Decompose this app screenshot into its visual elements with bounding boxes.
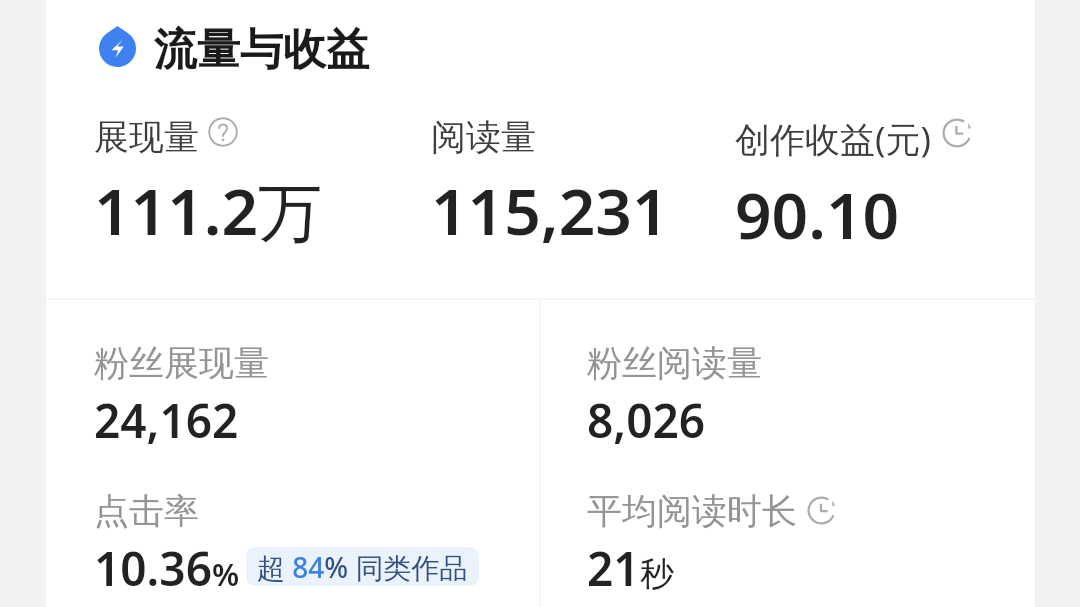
button[interactable]: 创作收益(元) (735, 115, 932, 258)
staticText: % (212, 553, 240, 595)
staticText: 21 (587, 537, 640, 600)
button[interactable]: 粉丝阅读量 (587, 341, 762, 452)
staticText: 111.2万 (94, 167, 323, 254)
staticText: 秒 (640, 553, 674, 596)
staticText: 粉丝展现量 (94, 341, 269, 385)
button[interactable]: 平均阅读时长说明 (807, 496, 836, 525)
staticText: 流量与收益 (154, 23, 369, 77)
staticText: 10.36 (94, 537, 212, 600)
staticText: 90.10 (735, 171, 900, 258)
staticText: 点击率 (94, 489, 199, 533)
button[interactable]: 展现量说明 (208, 117, 238, 147)
button[interactable]: 平均阅读时长 (587, 489, 797, 600)
button[interactable]: 展现量 (94, 115, 323, 254)
staticText: 阅读量 (431, 115, 536, 159)
button[interactable]: 收益历史 (942, 118, 972, 148)
button[interactable]: 点击率 (94, 489, 479, 600)
staticText: 创作收益(元) (735, 115, 932, 163)
button[interactable]: 阅读量 (431, 115, 669, 254)
staticText: 粉丝阅读量 (587, 341, 762, 385)
staticText: 展现量 (94, 115, 199, 159)
button[interactable]: 粉丝展现量 (94, 341, 269, 452)
staticText: 115,231 (431, 167, 669, 254)
staticText: 8,026 (587, 389, 706, 452)
staticText: 24,162 (94, 389, 239, 452)
button[interactable]: 超 84% 同类作品 (246, 547, 479, 586)
staticText: 平均阅读时长 (587, 489, 797, 533)
staticText: 超 84% 同类作品 (257, 548, 468, 586)
button[interactable]: 流量与收益 (99, 14, 369, 68)
